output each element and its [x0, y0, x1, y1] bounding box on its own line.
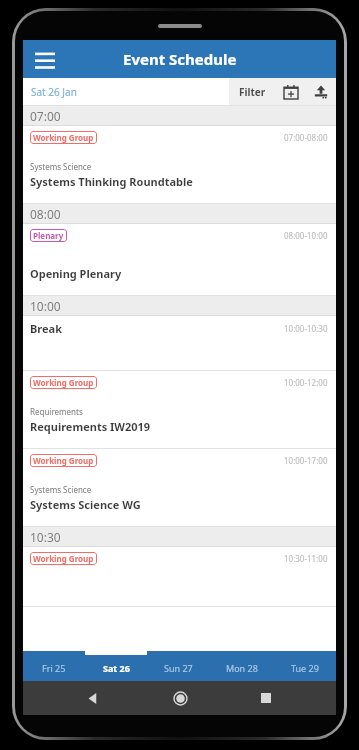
staticText: Mon 28 — [226, 662, 258, 674]
staticText: Opening Plenary — [30, 266, 122, 281]
button[interactable]: Plenary — [23, 224, 336, 296]
staticText: Working Group — [33, 132, 94, 143]
button[interactable]: Add to calendar — [276, 78, 306, 105]
button[interactable]: Working Group — [23, 126, 336, 204]
staticText: 08:00 — [30, 206, 61, 222]
staticText: Systems Science — [30, 161, 92, 172]
button[interactable]: Sun 27 — [147, 655, 210, 681]
staticText: Systems Science — [30, 484, 92, 495]
staticText: 10:00-17:00 — [284, 455, 328, 466]
staticText: Working Group — [33, 455, 94, 466]
button[interactable]: Break — [23, 316, 336, 371]
button[interactable]: Filter — [239, 78, 266, 105]
button[interactable]: Sat 26 Jan — [23, 78, 229, 105]
button[interactable]: Mon 28 — [210, 655, 273, 681]
staticText: Tue 29 — [291, 662, 319, 674]
staticText: Systems Thinking Roundtable — [30, 174, 193, 189]
button[interactable]: Recent apps — [249, 681, 283, 715]
staticText: Working Group — [33, 553, 94, 564]
staticText: 10:00-12:00 — [284, 377, 328, 388]
button[interactable]: Home — [163, 681, 197, 715]
button[interactable]: Open navigation menu — [29, 43, 61, 75]
button[interactable]: Sat 26 — [85, 655, 147, 681]
staticText: 08:00-10:00 — [284, 230, 328, 241]
staticText: 10:00-10:30 — [284, 323, 328, 334]
staticText: 10:30 — [30, 529, 61, 545]
staticText: Systems Science WG — [30, 497, 141, 512]
staticText: Sat 26 — [103, 662, 130, 674]
button[interactable]: Working Group — [23, 547, 336, 607]
staticText: 10:00 — [30, 298, 61, 314]
staticText: 07:00 — [30, 108, 61, 124]
staticText: Working Group — [33, 377, 94, 388]
staticText: Event Schedule — [123, 49, 237, 69]
button[interactable]: Export schedule — [306, 78, 336, 105]
staticText: Requirements — [30, 406, 83, 417]
staticText: Break — [30, 321, 62, 336]
staticText: Plenary — [33, 230, 64, 241]
staticText: Fri 25 — [42, 662, 66, 674]
button[interactable]: Working Group — [23, 449, 336, 527]
staticText: Sun 27 — [164, 662, 193, 674]
button[interactable]: Fri 25 — [23, 655, 85, 681]
button[interactable]: Working Group — [23, 371, 336, 449]
staticText: 10:30-11:00 — [284, 553, 328, 564]
button[interactable]: Back — [76, 681, 110, 715]
staticText: Sat 26 Jan — [31, 85, 77, 99]
staticText: Filter — [239, 85, 266, 99]
staticText: Requirements IW2019 — [30, 419, 151, 434]
button[interactable]: Tue 29 — [273, 655, 336, 681]
staticText: 07:00-08:00 — [284, 132, 328, 143]
